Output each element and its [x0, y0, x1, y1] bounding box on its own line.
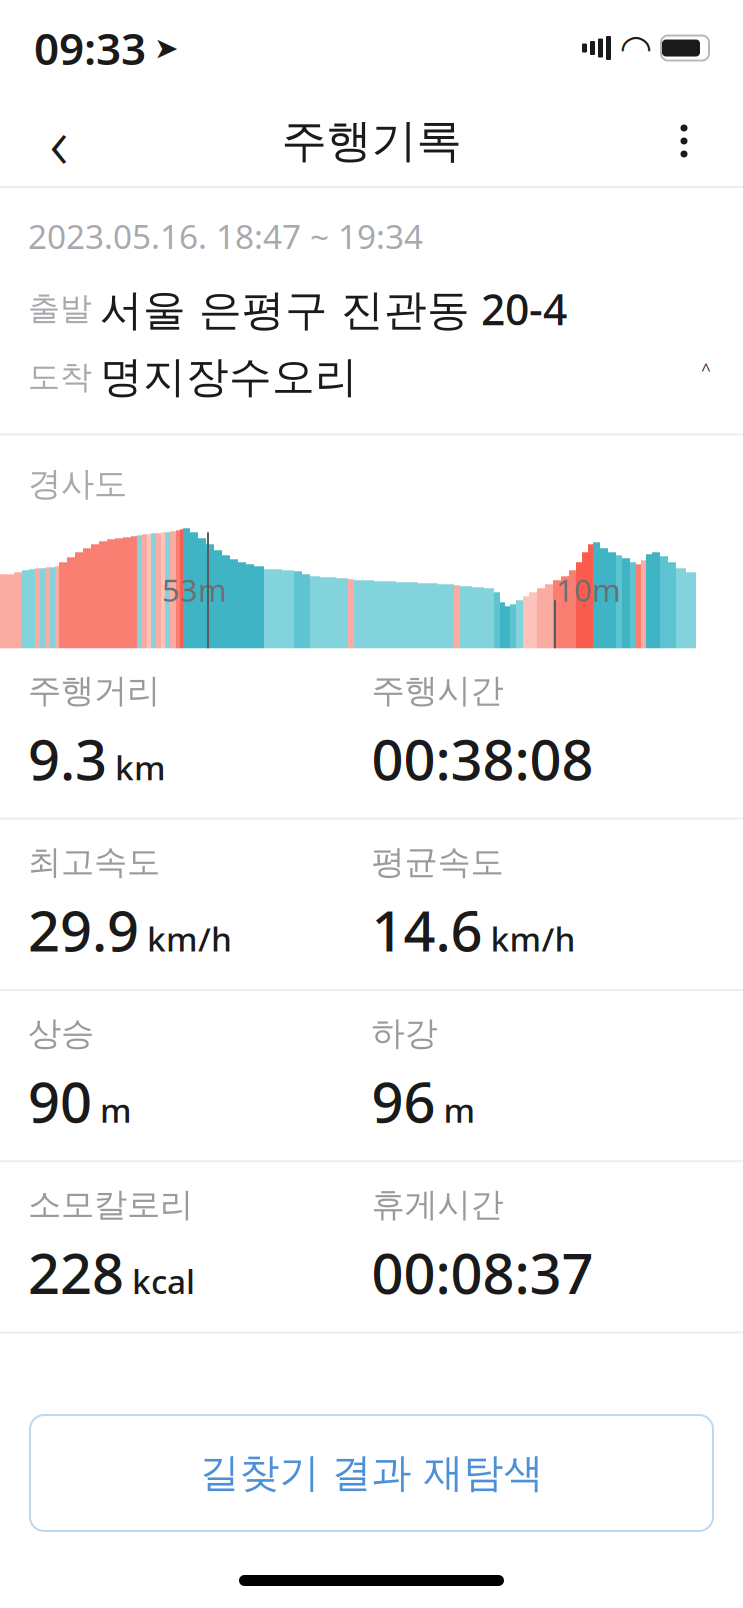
- staticText: 주행시간: [371, 670, 503, 711]
- staticText: 경사도: [28, 463, 127, 504]
- staticText: 평균속도: [371, 842, 503, 882]
- staticText: 서울 은평구 진관동 20-4: [100, 280, 567, 337]
- button[interactable]: More options: [639, 96, 729, 186]
- staticText: 주행기록: [281, 113, 461, 169]
- staticText: 9.3: [28, 721, 107, 796]
- staticText: 96: [371, 1064, 435, 1138]
- staticText: 53m: [162, 569, 227, 610]
- button[interactable]: 길찾기 결과 재탐색: [30, 1415, 713, 1531]
- staticText: kcal: [132, 1259, 195, 1303]
- staticText: km/h: [490, 916, 575, 961]
- button[interactable]: Back: [14, 96, 104, 186]
- staticText: 도착: [28, 357, 92, 397]
- staticText: 00:08:37: [371, 1235, 593, 1309]
- button[interactable]: 2023.05.16. 18:47 ~ 19:34: [0, 188, 743, 433]
- staticText: 228: [28, 1235, 124, 1309]
- staticText: 90: [28, 1064, 92, 1138]
- staticText: 00:38:08: [371, 721, 593, 796]
- staticText: 소모칼로리: [28, 1184, 193, 1225]
- staticText: km/h: [147, 916, 232, 961]
- staticText: 출발: [28, 289, 92, 328]
- staticText: 길찾기 결과 재탐색: [199, 1448, 543, 1497]
- staticText: 최고속도: [28, 842, 160, 882]
- staticText: 휴게시간: [371, 1184, 503, 1225]
- staticText: 하강: [371, 1013, 437, 1054]
- staticText: ‹: [49, 93, 68, 189]
- staticText: ˄: [701, 354, 711, 400]
- staticText: 10m: [556, 569, 621, 610]
- staticText: 29.9: [28, 892, 139, 967]
- staticText: km: [115, 745, 166, 789]
- staticText: 주행거리: [28, 670, 160, 711]
- staticText: 09:33: [34, 19, 146, 77]
- staticText: 명지장수오리: [100, 351, 358, 403]
- staticText: m: [100, 1088, 132, 1132]
- staticText: 14.6: [371, 892, 482, 967]
- staticText: 2023.05.16. 18:47 ~ 19:34: [28, 214, 423, 258]
- staticText: m: [443, 1088, 475, 1132]
- staticText: ➤: [154, 31, 179, 65]
- staticText: ◠: [621, 27, 650, 69]
- staticText: 상승: [28, 1013, 94, 1054]
